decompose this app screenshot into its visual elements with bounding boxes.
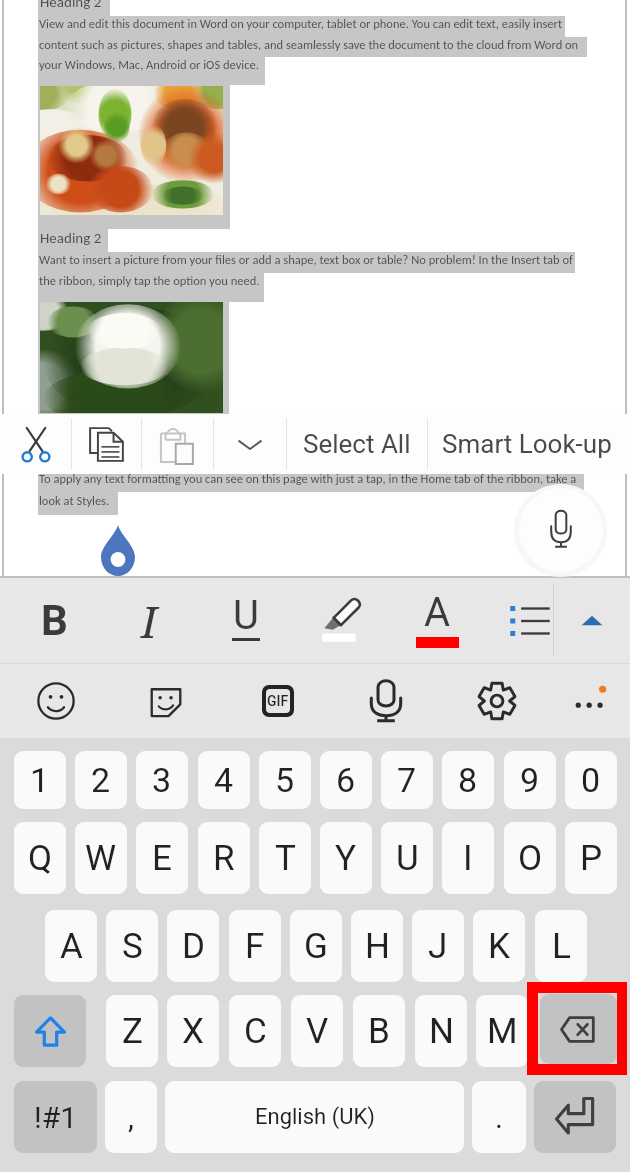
button[interactable]: Bulleted list	[496, 578, 564, 663]
button[interactable]: T	[259, 822, 311, 894]
button[interactable]: V	[291, 995, 343, 1067]
staticText: !#1	[34, 1100, 78, 1135]
staticText: English (UK)	[255, 1104, 375, 1130]
button[interactable]: .	[472, 1081, 526, 1153]
button[interactable]: 1	[14, 751, 66, 809]
button[interactable]: I	[442, 822, 494, 894]
staticText: I	[141, 591, 158, 651]
button[interactable]: L	[535, 910, 587, 982]
button[interactable]: Bold	[20, 578, 88, 663]
staticText: 0	[581, 760, 601, 800]
button[interactable]: Y	[320, 822, 372, 894]
button[interactable]: 0	[565, 751, 617, 809]
button[interactable]: Settings	[465, 664, 529, 738]
button[interactable]: H	[351, 910, 403, 982]
button[interactable]: W	[75, 822, 127, 894]
button[interactable]: R	[198, 822, 250, 894]
staticText: X	[182, 1011, 204, 1052]
staticText: 6	[336, 760, 356, 800]
button[interactable]: Enter	[534, 1081, 616, 1153]
button[interactable]: ,	[105, 1081, 157, 1153]
staticText: 3	[152, 760, 172, 800]
button[interactable]: D	[167, 910, 219, 982]
button[interactable]: U	[381, 822, 433, 894]
button[interactable]: Backspace	[540, 994, 617, 1064]
staticText: Select All	[303, 429, 411, 459]
button[interactable]: More options	[213, 414, 286, 474]
button[interactable]: Cut	[0, 414, 71, 474]
button[interactable]: A	[45, 910, 97, 982]
button[interactable]: 7	[381, 751, 433, 809]
staticText: H	[365, 926, 390, 967]
staticText: A	[60, 926, 83, 967]
button[interactable]: Paste	[141, 414, 212, 474]
button[interactable]: 9	[504, 751, 556, 809]
button[interactable]: M	[476, 995, 528, 1067]
button[interactable]: 2	[75, 751, 127, 809]
staticText: I	[463, 838, 473, 879]
staticText: M	[487, 1011, 518, 1052]
button[interactable]: Expand	[558, 578, 626, 663]
staticText: L	[552, 926, 571, 967]
button[interactable]: GIF	[246, 664, 310, 738]
button[interactable]: Dictate	[519, 488, 603, 572]
button[interactable]: Q	[14, 822, 66, 894]
staticText: 2	[91, 760, 111, 800]
staticText: E	[152, 838, 172, 879]
button[interactable]: 6	[320, 751, 372, 809]
staticText: Heading 2	[40, 0, 102, 11]
button[interactable]: Font colour	[403, 578, 471, 663]
staticText: Y	[335, 838, 357, 879]
button[interactable]: 5	[259, 751, 311, 809]
button[interactable]: F	[229, 910, 281, 982]
button[interactable]: 8	[442, 751, 494, 809]
button[interactable]: G	[290, 910, 342, 982]
button[interactable]: S	[106, 910, 158, 982]
button[interactable]: Emoji	[24, 664, 88, 738]
button[interactable]: Voice input	[354, 664, 418, 738]
button[interactable]: More	[558, 664, 622, 738]
button[interactable]: Underline	[212, 578, 280, 663]
button[interactable]: !#1	[14, 1081, 97, 1153]
button[interactable]: Italic	[115, 578, 183, 663]
staticText: U	[396, 838, 419, 879]
button[interactable]: Stickers	[134, 664, 198, 738]
staticText: Q	[28, 838, 53, 879]
staticText: Z	[122, 1011, 143, 1052]
staticText: V	[306, 1011, 329, 1052]
button[interactable]: Select All	[286, 414, 427, 474]
button[interactable]: C	[229, 995, 281, 1067]
staticText: 7	[397, 760, 417, 800]
staticText: G	[304, 926, 328, 967]
button[interactable]: K	[473, 910, 525, 982]
button[interactable]: O	[504, 822, 556, 894]
staticText: R	[213, 838, 235, 879]
staticText: Smart Look-up	[442, 429, 612, 459]
staticText: B	[41, 596, 68, 645]
button[interactable]: 3	[136, 751, 188, 809]
button[interactable]: Copy	[71, 414, 142, 474]
staticText: S	[122, 926, 143, 967]
button[interactable]: 4	[198, 751, 250, 809]
button[interactable]: B	[353, 995, 405, 1067]
staticText: 8	[458, 760, 478, 800]
staticText: D	[182, 926, 205, 967]
button[interactable]: English (UK)	[165, 1081, 464, 1153]
staticText: O	[518, 838, 543, 879]
staticText: GIF	[267, 693, 289, 709]
button[interactable]: E	[136, 822, 188, 894]
button[interactable]: P	[565, 822, 617, 894]
button[interactable]: Z	[106, 995, 158, 1067]
staticText: 5	[275, 760, 295, 800]
staticText: look at Styles.	[39, 493, 110, 508]
staticText: T	[275, 838, 296, 879]
button[interactable]: N	[415, 995, 467, 1067]
button[interactable]: Smart Look-up	[427, 414, 627, 474]
staticText: N	[429, 1011, 454, 1052]
staticText: J	[428, 926, 448, 967]
button[interactable]: Highlight	[308, 578, 376, 663]
staticText: 9	[520, 760, 540, 800]
button[interactable]: Shift	[14, 995, 86, 1067]
button[interactable]: J	[412, 910, 464, 982]
button[interactable]: X	[167, 995, 219, 1067]
